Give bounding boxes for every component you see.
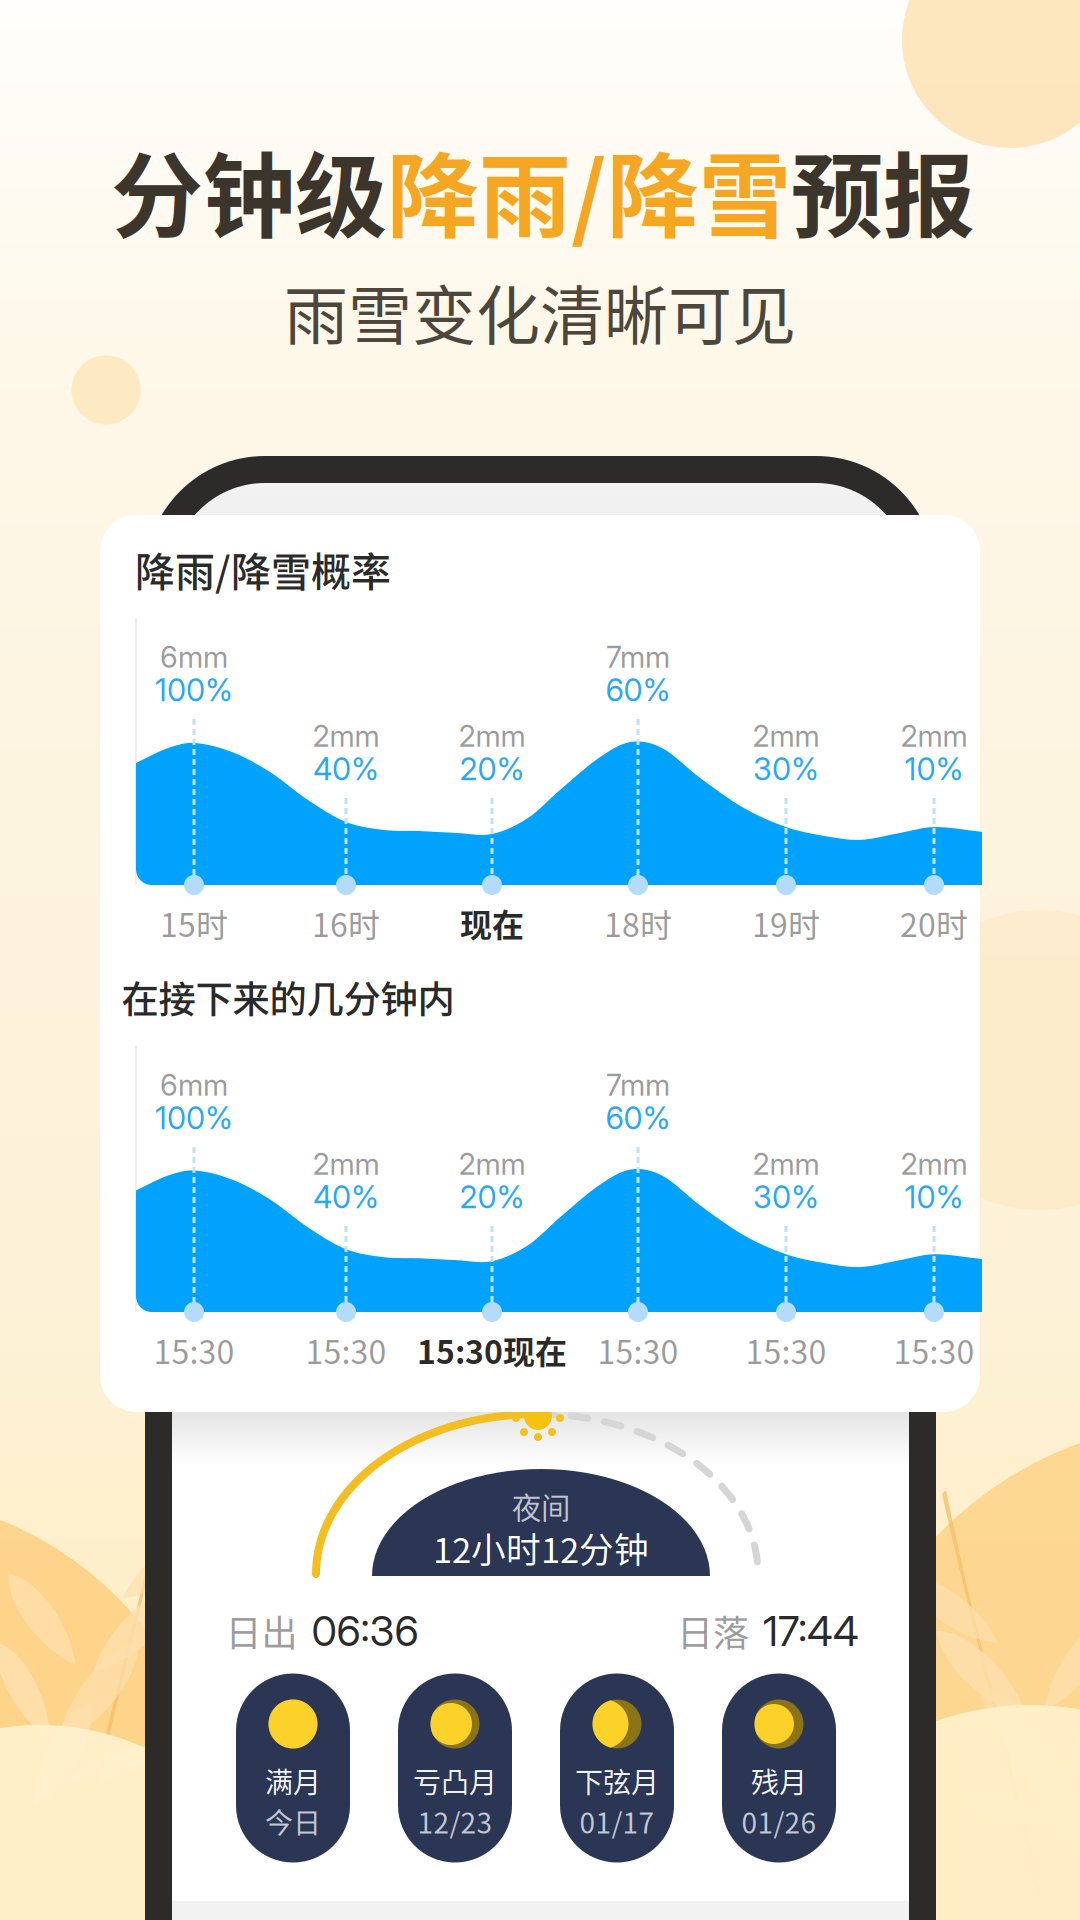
staticText: 2mm	[312, 1146, 379, 1182]
staticText: 15:30	[597, 1327, 678, 1373]
staticText: 在接下来的几分钟内	[121, 970, 454, 1024]
staticText: 降雨/降雪概率	[135, 540, 391, 598]
staticText: 60%	[605, 671, 670, 708]
staticText: 今日	[265, 1801, 321, 1841]
staticText: 6mm	[160, 639, 228, 675]
staticText: 15:30	[745, 1327, 826, 1373]
staticText: 12小时12分钟	[433, 1523, 649, 1573]
staticText: 15:30	[153, 1327, 234, 1373]
button[interactable]: 满月	[236, 1673, 350, 1862]
staticText: 2mm	[752, 1146, 819, 1182]
staticText: 2mm	[312, 718, 379, 754]
staticText: 20%	[459, 750, 524, 787]
staticText: 10%	[904, 750, 963, 787]
staticText: 30%	[753, 1178, 819, 1215]
staticText: 残月	[751, 1760, 807, 1801]
staticText: 满月	[265, 1760, 321, 1801]
staticText: 15时	[160, 900, 228, 946]
staticText: 01/17	[579, 1801, 654, 1841]
staticText: 18时	[604, 900, 672, 946]
button[interactable]: 残月	[722, 1673, 836, 1862]
staticText: 17:44	[763, 1606, 859, 1656]
button[interactable]: 亏凸月	[398, 1673, 512, 1862]
staticText: 60%	[605, 1099, 670, 1136]
staticText: 6mm	[160, 1067, 228, 1103]
staticText: 20%	[459, 1178, 524, 1215]
staticText: 10%	[904, 1178, 963, 1215]
staticText: 15:30	[893, 1327, 974, 1373]
staticText: 日落	[677, 1605, 749, 1657]
staticText: 06:36	[311, 1606, 418, 1656]
staticText: 下弦月	[575, 1760, 659, 1801]
staticText: 分钟级	[111, 123, 387, 257]
staticText: 15:30现在	[417, 1327, 567, 1373]
staticText: 19时	[752, 900, 820, 946]
staticText: 降雨/降雪	[387, 123, 791, 257]
staticText: 亏凸月	[413, 1760, 497, 1801]
staticText: 预报	[791, 123, 975, 257]
staticText: 40%	[313, 1178, 379, 1215]
staticText: 16时	[312, 900, 380, 946]
staticText: 7mm	[606, 639, 670, 675]
staticText: 日出	[225, 1605, 297, 1657]
staticText: 12/23	[417, 1801, 492, 1841]
staticText: 01/26	[741, 1801, 816, 1841]
staticText: 2mm	[900, 718, 967, 754]
staticText: 2mm	[458, 1146, 525, 1182]
staticText: 2mm	[752, 718, 819, 754]
staticText: 2mm	[900, 1146, 967, 1182]
staticText: 15:30	[305, 1327, 386, 1373]
staticText: 20时	[900, 900, 968, 946]
staticText: 雨雪变化清晰可见	[284, 265, 796, 357]
staticText: 40%	[313, 750, 379, 787]
staticText: 100%	[155, 671, 233, 708]
staticText: 7mm	[606, 1067, 670, 1103]
staticText: 现在	[460, 900, 524, 946]
staticText: 100%	[155, 1099, 233, 1136]
button[interactable]: 下弦月	[560, 1673, 674, 1862]
staticText: 30%	[753, 750, 819, 787]
staticText: 2mm	[458, 718, 525, 754]
staticText: 夜间	[512, 1485, 570, 1527]
